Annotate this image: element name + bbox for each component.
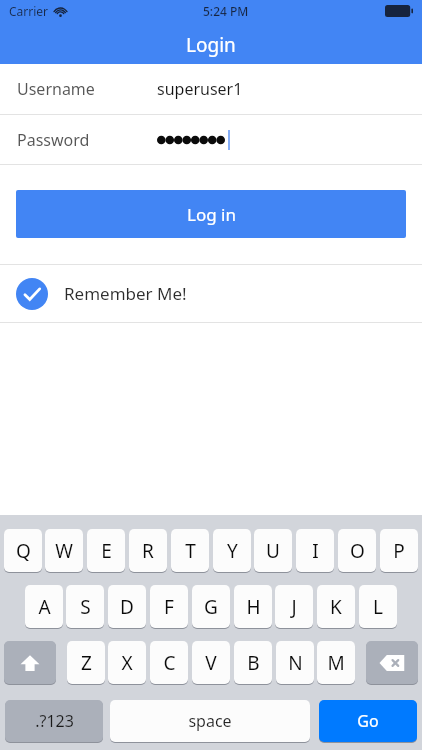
staticText: V <box>205 650 217 676</box>
staticText: W <box>55 538 73 564</box>
button[interactable]: Remember Me! <box>0 265 422 322</box>
staticText: space <box>188 710 232 732</box>
staticText: Remember Me! <box>64 282 187 305</box>
button[interactable]: Shift <box>4 641 56 684</box>
staticText: R <box>142 538 154 564</box>
staticText: I <box>312 538 319 564</box>
button[interactable]: D <box>108 585 146 628</box>
staticText: D <box>120 594 134 620</box>
button[interactable]: M <box>317 641 355 684</box>
button[interactable]: J <box>275 585 313 628</box>
staticText: superuser1 <box>157 78 243 100</box>
button[interactable]: E <box>87 529 125 572</box>
staticText: Z <box>81 650 92 676</box>
button[interactable]: .?123 <box>5 700 103 742</box>
button[interactable]: C <box>150 641 188 684</box>
staticText: Password <box>17 129 90 151</box>
staticText: U <box>266 538 280 564</box>
button[interactable]: S <box>66 585 104 628</box>
button[interactable]: H <box>234 585 272 628</box>
staticText: F <box>164 594 174 620</box>
staticText: S <box>80 594 91 620</box>
button[interactable]: Delete <box>366 641 418 684</box>
button[interactable]: space <box>110 700 310 742</box>
button[interactable]: R <box>129 529 167 572</box>
staticText: Q <box>16 538 31 564</box>
staticText: B <box>247 650 260 676</box>
button[interactable]: Go <box>319 700 417 742</box>
staticText: 5:24 PM <box>203 3 249 19</box>
staticText: Log in <box>187 203 236 226</box>
staticText: Username <box>17 78 95 100</box>
staticText: J <box>291 594 297 620</box>
button[interactable]: F <box>150 585 188 628</box>
staticText: T <box>185 538 196 564</box>
button[interactable]: K <box>317 585 355 628</box>
button[interactable]: O <box>338 529 376 572</box>
staticText: K <box>330 594 342 620</box>
button[interactable]: Y <box>213 529 251 572</box>
button[interactable]: W <box>45 529 83 572</box>
staticText: P <box>393 538 405 564</box>
staticText: H <box>246 594 261 620</box>
button[interactable]: G <box>192 585 230 628</box>
button[interactable]: P <box>380 529 418 572</box>
button[interactable]: L <box>359 585 397 628</box>
button[interactable]: U <box>254 529 292 572</box>
button[interactable]: Log in <box>16 190 406 238</box>
button[interactable]: Z <box>67 641 105 684</box>
staticText: Go <box>357 710 379 732</box>
staticText: O <box>350 538 365 564</box>
button[interactable]: B <box>234 641 272 684</box>
staticText: X <box>121 650 133 676</box>
button[interactable]: Q <box>4 529 42 572</box>
button[interactable]: T <box>171 529 209 572</box>
staticText: Carrier <box>9 3 49 19</box>
staticText: E <box>101 538 112 564</box>
staticText: Login <box>186 32 236 58</box>
staticText: C <box>163 650 176 676</box>
button[interactable]: V <box>192 641 230 684</box>
button[interactable]: A <box>25 585 63 628</box>
button[interactable]: X <box>108 641 146 684</box>
staticText: G <box>204 594 218 620</box>
staticText: Y <box>227 538 238 564</box>
button[interactable]: I <box>296 529 334 572</box>
staticText: L <box>373 594 383 620</box>
staticText: N <box>288 650 303 676</box>
staticText: M <box>327 650 345 676</box>
staticText: .?123 <box>35 710 74 732</box>
staticText: A <box>38 594 51 620</box>
button[interactable]: N <box>276 641 314 684</box>
